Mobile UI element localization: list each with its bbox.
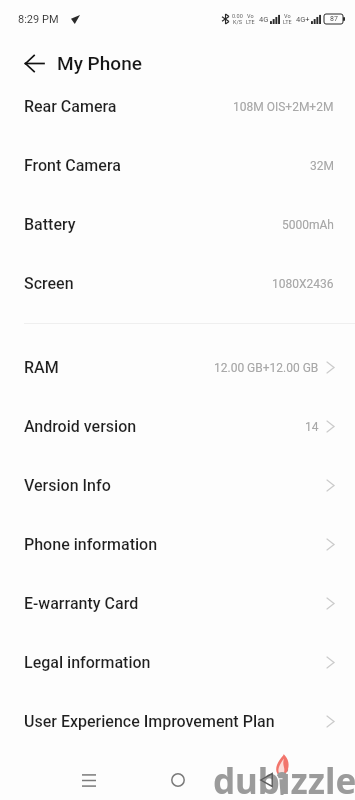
staticText: Front Camera [24,156,121,175]
button[interactable]: Back [243,757,289,800]
staticText: E-warranty Card [24,594,139,613]
staticText: 8:29 PM [18,13,59,26]
staticText: K/S [233,19,242,25]
staticText: 87 [330,15,338,23]
staticText: Screen [24,274,74,293]
staticText: dubizzle [213,757,355,800]
staticText: 5000mAh [282,218,334,232]
button[interactable]: Battery [0,195,355,254]
button[interactable]: E-warranty Card [0,574,355,633]
staticText: Version Info [24,476,111,495]
button[interactable]: Legal information [0,633,355,692]
button[interactable]: Rear Camera [0,77,355,136]
staticText: Legal information [24,653,151,672]
staticText: My Phone [57,52,142,74]
staticText: Vo [247,13,254,19]
staticText: 108M OIS+2M+2M [233,100,334,114]
staticText: 14 [305,420,319,434]
button[interactable]: Back [14,45,54,82]
button[interactable]: Home [155,757,201,800]
staticText: Battery [24,215,76,234]
button[interactable]: Phone information [0,515,355,574]
staticText: 4G [259,15,269,24]
staticText: 32M [310,159,334,173]
staticText: 4G+ [296,15,310,24]
button[interactable]: Recent apps [66,757,112,800]
staticText: Android version [24,417,137,436]
staticText: 0.00 [232,13,243,19]
button[interactable]: Version Info [0,456,355,515]
button[interactable]: User Experience Improvement Plan [0,692,355,751]
button[interactable]: Front Camera [0,136,355,195]
button[interactable]: RAM [0,338,355,397]
staticText: Vo [284,13,291,19]
staticText: 1080X2436 [272,277,334,291]
staticText: LTE [246,19,255,25]
staticText: User Experience Improvement Plan [24,712,275,731]
staticText: RAM [24,358,59,377]
staticText: Phone information [24,535,158,554]
button[interactable]: Android version [0,397,355,456]
staticText: 12.00 GB+12.00 GB [214,361,319,375]
staticText: LTE [283,19,292,25]
staticText: Rear Camera [24,97,117,116]
button[interactable]: Screen [0,254,355,313]
